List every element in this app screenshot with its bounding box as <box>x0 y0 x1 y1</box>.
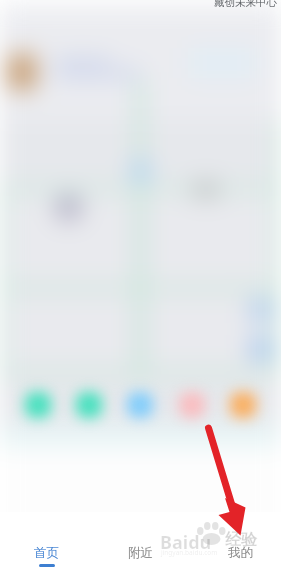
button[interactable]: 我的 <box>187 545 281 575</box>
staticText: 我的 <box>228 545 253 561</box>
staticText: 附近 <box>128 545 153 561</box>
staticText: jingyan.baidu.com <box>161 548 218 557</box>
button[interactable]: 附近 <box>93 545 187 575</box>
staticText: 首页 <box>34 545 59 561</box>
button[interactable]: 首页 <box>0 545 93 575</box>
staticText: 经验 <box>225 530 257 550</box>
staticText: 藏创未来中心 <box>214 0 277 7</box>
staticText: Baidu <box>160 530 212 555</box>
